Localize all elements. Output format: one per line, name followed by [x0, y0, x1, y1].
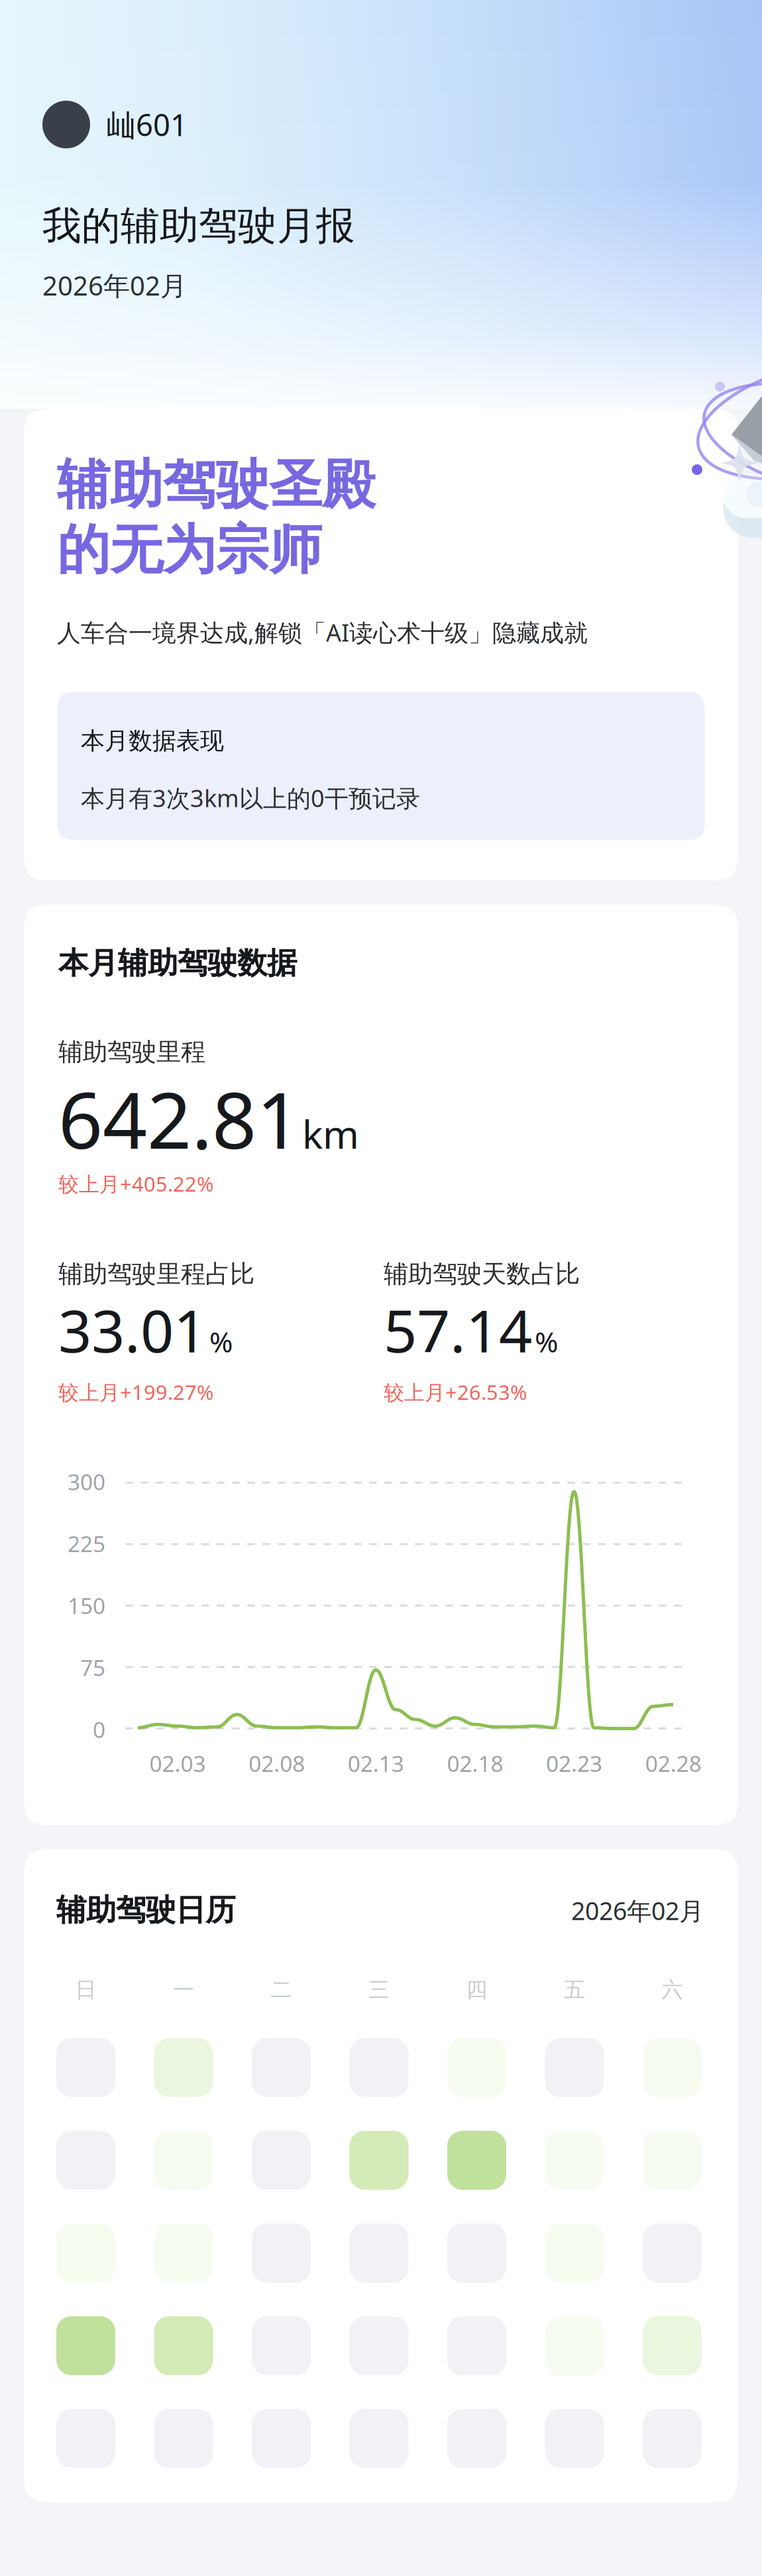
staticText: km	[302, 1108, 359, 1159]
staticText: 300	[68, 1467, 105, 1496]
staticText: 四	[466, 1977, 487, 2003]
staticText: %	[209, 1323, 233, 1360]
staticText: 较上月+26.53%	[384, 1378, 527, 1405]
staticText: 辅助驾驶天数占比	[384, 1259, 580, 1289]
staticText: 33.01	[58, 1291, 207, 1369]
staticText: 辅助驾驶里程	[58, 1037, 205, 1067]
staticText: 的无为宗师	[57, 518, 322, 583]
staticText: 本月有3次3km以上的0干预记录	[81, 782, 420, 814]
staticText: 02.23	[546, 1749, 602, 1778]
staticText: 2026年02月	[42, 268, 187, 303]
staticText: 我的辅助驾驶月报	[42, 202, 355, 250]
staticText: 150	[68, 1591, 105, 1620]
staticText: 0	[93, 1715, 105, 1744]
staticText: 225	[68, 1529, 105, 1558]
staticText: 本月辅助驾驶数据	[58, 945, 297, 982]
staticText: 六	[662, 1977, 683, 2003]
staticText: 02.03	[149, 1749, 206, 1778]
staticText: 五	[564, 1977, 585, 2003]
staticText: 辅助驾驶里程占比	[58, 1259, 254, 1289]
staticText: %	[535, 1323, 558, 1360]
staticText: 一	[173, 1977, 194, 2003]
staticText: 人车合一境界达成,解锁「AI读心术十级」隐藏成就	[57, 616, 588, 648]
staticText: 02.08	[249, 1749, 305, 1778]
staticText: 较上月+199.27%	[58, 1378, 213, 1405]
staticText: 二	[271, 1977, 292, 2003]
staticText: 642.81	[58, 1067, 301, 1170]
staticText: 辅助驾驶日历	[56, 1892, 235, 1929]
staticText: 日	[75, 1977, 96, 2003]
staticText: 02.13	[348, 1749, 404, 1778]
staticText: 本月数据表现	[81, 726, 224, 755]
staticText: 2026年02月	[571, 1894, 704, 1927]
staticText: 辅助驾驶圣殿	[57, 452, 375, 518]
staticText: 屾601	[106, 105, 188, 144]
staticText: 57.14	[384, 1291, 532, 1369]
staticText: 02.18	[447, 1749, 503, 1778]
staticText: 三	[368, 1977, 390, 2003]
staticText: 较上月+405.22%	[58, 1170, 213, 1197]
staticText: 75	[80, 1653, 105, 1682]
button[interactable]: 屾601	[42, 101, 188, 148]
staticText: 02.28	[645, 1749, 701, 1778]
